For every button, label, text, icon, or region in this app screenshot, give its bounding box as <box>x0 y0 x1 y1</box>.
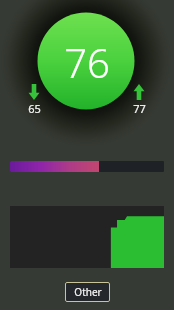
button[interactable] <box>10 161 164 172</box>
staticText: 76 <box>64 35 110 89</box>
staticText: 65 <box>28 101 41 116</box>
staticText: Other <box>74 285 102 299</box>
button[interactable]: Other <box>65 282 110 302</box>
button[interactable] <box>10 206 164 268</box>
button[interactable]: 76 <box>0 0 174 148</box>
staticText: 77 <box>133 101 146 116</box>
